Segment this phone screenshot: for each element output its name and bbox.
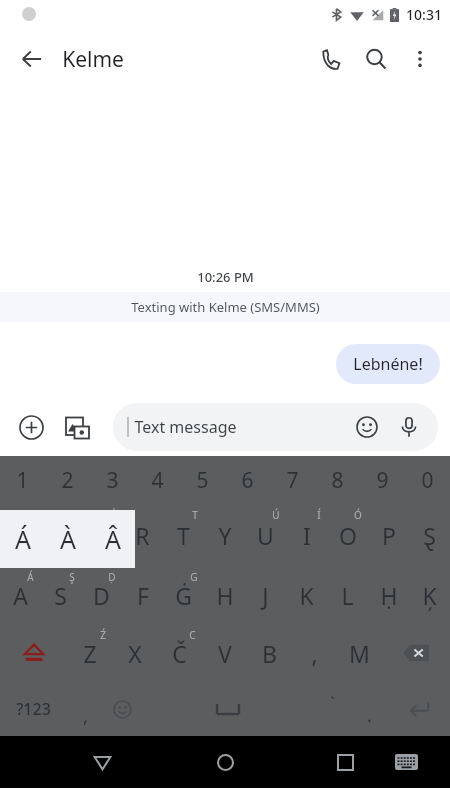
button[interactable]: 4 xyxy=(135,456,180,504)
button[interactable]: R xyxy=(122,504,163,566)
button[interactable]: Attach xyxy=(10,406,52,448)
button[interactable]: 3 xyxy=(90,456,135,504)
button[interactable]: Á xyxy=(0,510,45,568)
button[interactable]: T xyxy=(163,504,204,566)
button[interactable]: Ḥ xyxy=(368,566,409,624)
button[interactable]: More options xyxy=(398,37,442,81)
button[interactable]: Space xyxy=(141,682,314,736)
button[interactable]: P xyxy=(368,504,409,566)
button[interactable]: A xyxy=(0,566,40,624)
button[interactable]: Q xyxy=(0,504,40,566)
staticText: ?123 xyxy=(16,698,51,720)
button[interactable]: Search xyxy=(354,37,398,81)
staticText: , xyxy=(83,704,88,729)
staticText: Text message xyxy=(134,416,237,438)
staticText: Ķ xyxy=(422,580,437,611)
button[interactable]: ?123 xyxy=(0,682,67,736)
button[interactable]: M xyxy=(337,624,382,682)
button[interactable]: U xyxy=(245,504,286,566)
staticText: J xyxy=(262,580,269,611)
button[interactable]: F xyxy=(122,566,163,624)
staticText: K xyxy=(299,580,314,611)
staticText: F xyxy=(137,580,149,611)
button[interactable]: H xyxy=(204,566,245,624)
staticText: Q xyxy=(11,520,29,551)
staticText: Lebnéne! xyxy=(353,353,423,375)
button[interactable]: Z xyxy=(67,624,112,682)
button[interactable]: 1 xyxy=(0,456,45,504)
staticText: C xyxy=(189,628,196,642)
button[interactable]: Ķ xyxy=(409,566,450,624)
button[interactable]: Back xyxy=(82,742,122,782)
button[interactable]: Call xyxy=(310,37,354,81)
button[interactable]: E xyxy=(81,504,122,566)
button[interactable]: Home xyxy=(205,742,245,782)
button[interactable]: 6 xyxy=(225,456,270,504)
staticText: 10:26 PM xyxy=(197,268,254,286)
button[interactable]: Ȿ xyxy=(409,504,450,566)
button[interactable]: Switch keyboard xyxy=(386,742,426,782)
button[interactable]: Shift xyxy=(0,624,67,682)
button[interactable]: D xyxy=(81,566,122,624)
staticText: . xyxy=(367,703,372,728)
button[interactable]: 2 xyxy=(45,456,90,504)
staticText: L xyxy=(341,580,354,611)
button[interactable]: B xyxy=(247,624,292,682)
button[interactable]: O xyxy=(327,504,368,566)
staticText: T xyxy=(177,520,190,551)
button[interactable]: 9 xyxy=(360,456,405,504)
staticText: 1 xyxy=(16,466,29,495)
button[interactable]: Â xyxy=(90,510,135,568)
button[interactable]: À xyxy=(45,510,90,568)
staticText: W xyxy=(50,520,72,551)
staticText: 4 xyxy=(151,466,164,495)
staticText: R xyxy=(135,520,150,551)
button[interactable]: Back xyxy=(10,37,54,81)
button[interactable]: W xyxy=(40,504,81,566)
button[interactable]: Emoji xyxy=(350,410,384,444)
staticText: E xyxy=(95,520,108,551)
staticText: É xyxy=(110,508,116,522)
staticText: Ź xyxy=(100,628,106,642)
staticText: , xyxy=(311,638,318,669)
staticText: Ḥ xyxy=(380,580,398,611)
button[interactable]: S xyxy=(40,566,81,624)
button[interactable]: Ġ xyxy=(163,566,204,624)
button[interactable]: L xyxy=(327,566,368,624)
staticText: Č xyxy=(172,638,187,669)
staticText: 3 xyxy=(106,466,119,495)
button[interactable]: 0 xyxy=(405,456,450,504)
button[interactable]: 5 xyxy=(180,456,225,504)
button[interactable]: Voice input xyxy=(392,410,426,444)
staticText: Ȿ xyxy=(423,520,436,551)
button[interactable]: K xyxy=(286,566,327,624)
button[interactable]: V xyxy=(202,624,247,682)
staticText: D xyxy=(93,580,110,611)
staticText: Á xyxy=(27,570,34,584)
button[interactable]: I xyxy=(286,504,327,566)
button[interactable]: Emoji xyxy=(104,682,141,736)
staticText: Ġ xyxy=(175,580,192,611)
button[interactable]: J xyxy=(245,566,286,624)
button[interactable]: Gallery xyxy=(56,406,98,448)
staticText: M xyxy=(349,638,370,669)
button[interactable]: Recents xyxy=(325,742,365,782)
staticText: Ú xyxy=(272,508,280,522)
button[interactable]: Č xyxy=(157,624,202,682)
staticText: S xyxy=(54,580,67,611)
staticText: X xyxy=(128,638,142,669)
button[interactable]: Y xyxy=(204,504,245,566)
staticText: 5 xyxy=(196,466,209,495)
button[interactable]: Text message xyxy=(113,403,438,451)
button[interactable]: Lebnéne! xyxy=(336,344,440,384)
button[interactable]: 8 xyxy=(315,456,360,504)
button[interactable]: X xyxy=(112,624,157,682)
button[interactable]: 7 xyxy=(270,456,315,504)
button[interactable]: Backspace xyxy=(382,624,450,682)
staticText: U xyxy=(257,520,274,551)
